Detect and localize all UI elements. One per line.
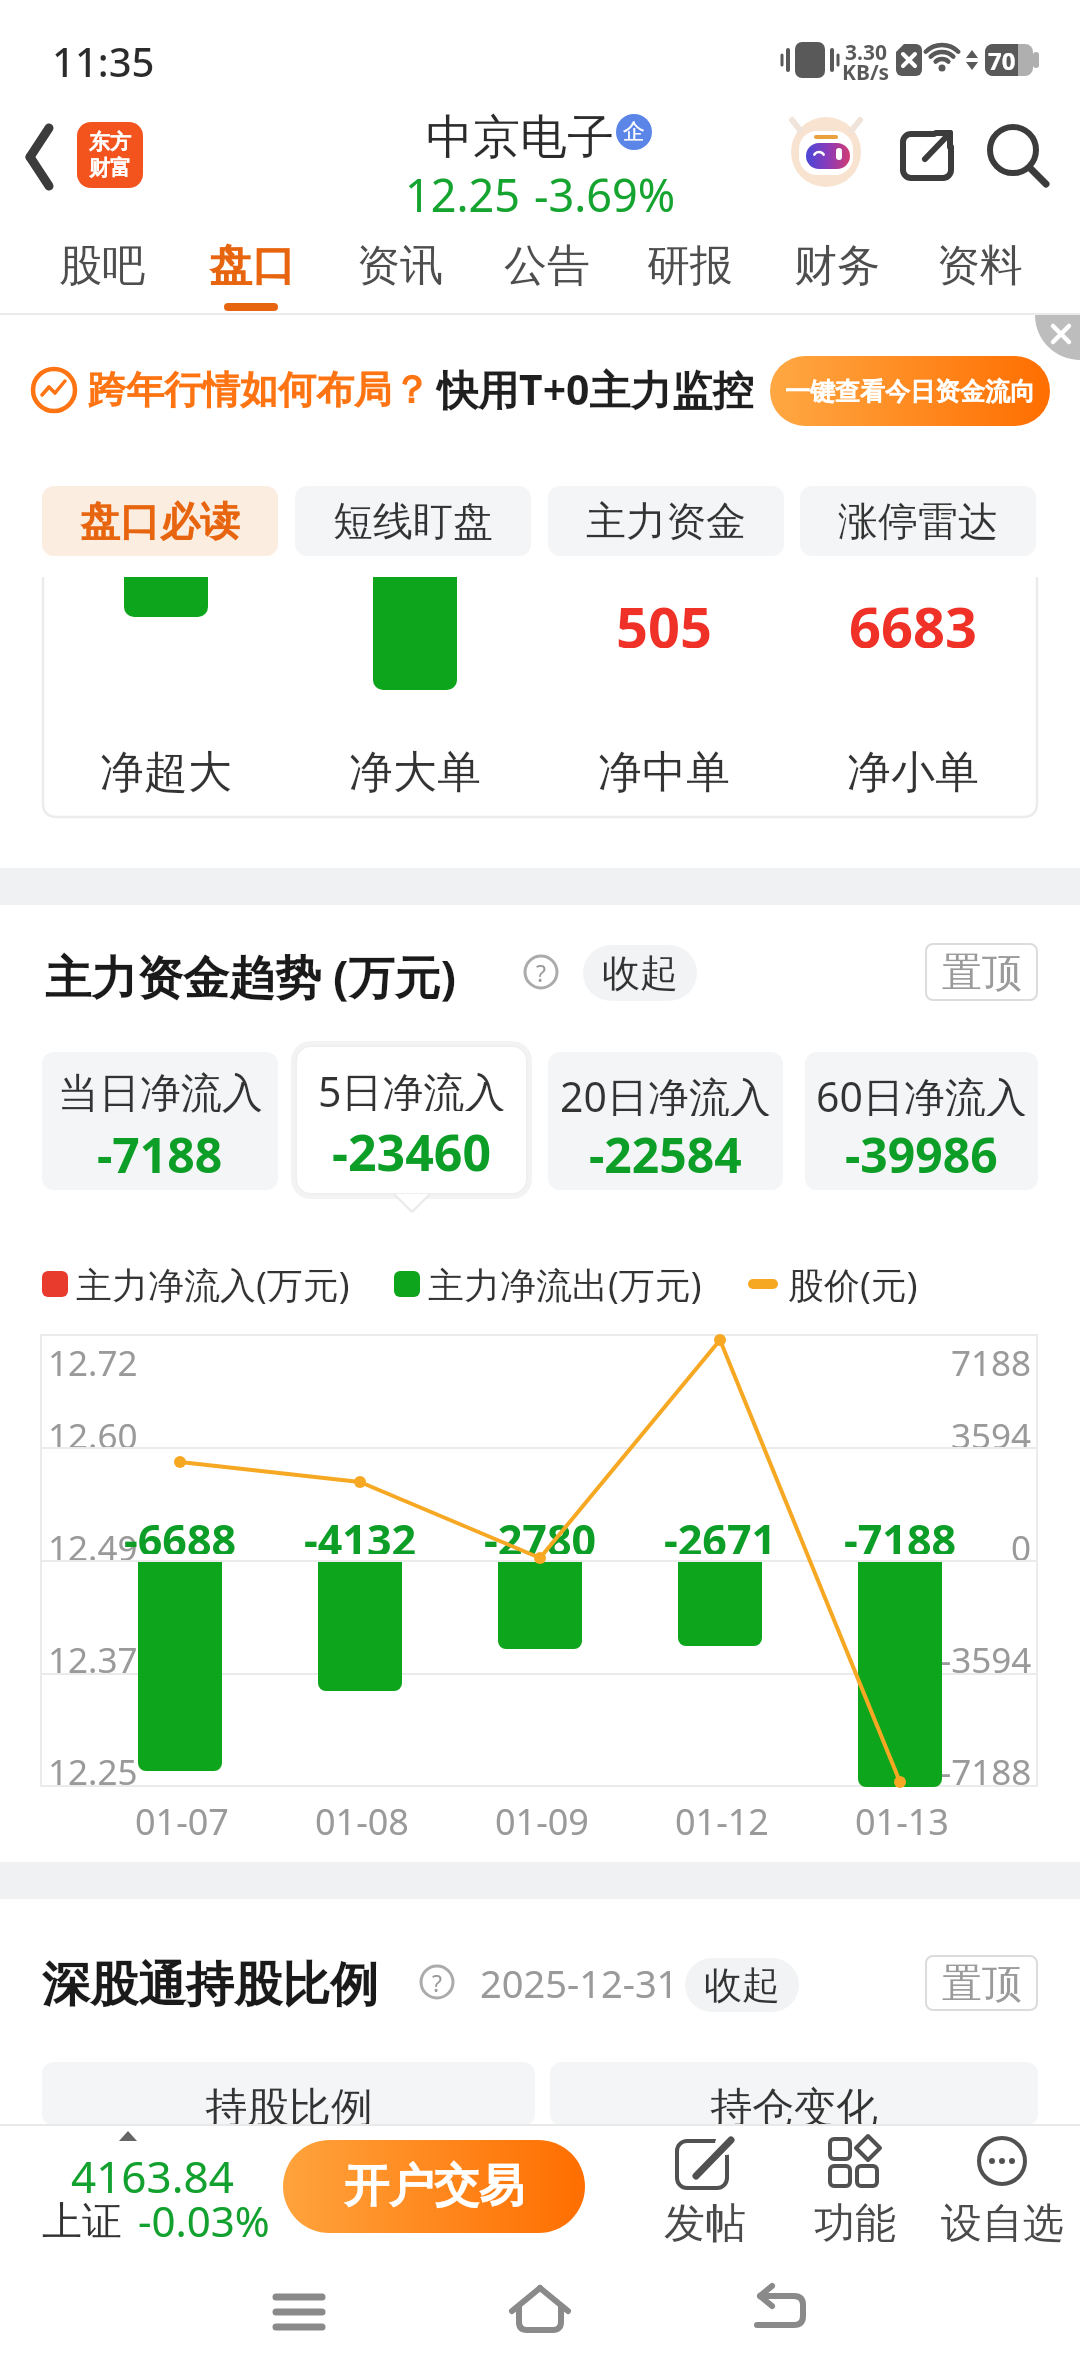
button[interactable]	[650, 2130, 760, 2242]
staticText: 研报	[647, 239, 733, 293]
button[interactable]: 主力资金	[548, 486, 784, 556]
button[interactable]: 开户交易	[283, 2140, 585, 2233]
staticText: 公告	[504, 239, 590, 293]
staticText: 12.25	[405, 164, 521, 212]
button[interactable]	[250, 2270, 350, 2360]
staticText: 12.37	[48, 1636, 138, 1676]
staticText: 主力资金	[586, 496, 746, 546]
staticText: -4132	[304, 1510, 417, 1554]
staticText: 12.60	[48, 1412, 138, 1452]
staticText: 5日净流入	[318, 1063, 506, 1111]
staticText: -6688	[124, 1510, 237, 1554]
button[interactable]	[550, 2062, 1038, 2126]
button[interactable]: 公告	[472, 222, 622, 310]
staticText: ?	[432, 1967, 442, 1998]
button[interactable]: 股吧	[27, 222, 177, 310]
staticText: 股价(元)	[788, 1260, 918, 1309]
button[interactable]: 置顶	[925, 943, 1038, 1001]
staticText: 财务	[794, 239, 880, 293]
staticText: 发帖	[664, 2198, 746, 2246]
staticText: 主力资金趋势 (万元)	[45, 945, 457, 1003]
button[interactable]: 涨停雷达	[800, 486, 1036, 556]
button[interactable]	[490, 2270, 590, 2360]
button[interactable]: 资讯	[325, 222, 475, 310]
staticText: 持仓变化	[710, 2082, 878, 2135]
button[interactable]	[42, 570, 1038, 819]
button[interactable]: 短线盯盘	[295, 486, 531, 556]
staticText: ?	[536, 957, 546, 988]
staticText: 3594	[951, 1412, 1032, 1452]
button[interactable]	[730, 2270, 830, 2360]
staticText: 01-13	[855, 1797, 949, 1841]
button[interactable]: 收起	[685, 1958, 799, 2012]
staticText: -2671	[664, 1510, 777, 1554]
staticText: 01-12	[675, 1797, 769, 1841]
staticText: 深股通持股比例	[42, 1955, 378, 2013]
staticText: 当日净流入	[58, 1068, 263, 1116]
staticText: 12.72	[48, 1339, 138, 1379]
staticText: 净超大	[100, 745, 232, 795]
button[interactable]	[20, 2130, 270, 2246]
staticText: 01-07	[135, 1797, 229, 1841]
staticText: 中京电子	[426, 108, 614, 164]
staticText: 开户交易	[344, 2158, 524, 2215]
staticText: 设自选	[941, 2198, 1064, 2246]
staticText: 12.25	[48, 1748, 138, 1788]
staticText: 505	[616, 588, 713, 648]
button[interactable]	[42, 1052, 278, 1190]
button[interactable]	[791, 119, 861, 187]
staticText: 快用T+0主力监控	[437, 361, 754, 417]
button[interactable]: 财务	[762, 222, 912, 310]
staticText: -3594	[940, 1636, 1032, 1676]
staticText: 盘口必读	[80, 496, 240, 546]
staticText: 12.49	[48, 1524, 138, 1564]
button[interactable]	[0, 315, 1080, 457]
staticText: -23460	[332, 1118, 491, 1174]
button[interactable]	[805, 1052, 1038, 1190]
button[interactable]	[898, 128, 958, 184]
button[interactable]	[945, 2130, 1065, 2242]
staticText: 主力净流出(万元)	[428, 1260, 702, 1309]
staticText: -7188	[844, 1510, 957, 1554]
staticText: 跨年行情如何布局？	[88, 366, 430, 414]
button[interactable]: 研报	[615, 222, 765, 310]
staticText: -22584	[589, 1122, 742, 1178]
button[interactable]: 盘口	[177, 222, 327, 310]
button[interactable]	[42, 2062, 535, 2126]
staticText: -3.69%	[534, 164, 676, 212]
staticText: 股吧	[59, 239, 145, 293]
staticText: -39986	[845, 1122, 998, 1178]
staticText: 功能	[814, 2198, 896, 2246]
button[interactable]: 盘口必读	[42, 486, 278, 556]
button[interactable]: 资料	[905, 222, 1055, 310]
staticText: 收起	[704, 1961, 780, 2009]
staticText: 01-09	[495, 1797, 589, 1841]
staticText: 资料	[937, 239, 1023, 293]
button[interactable]: 置顶	[925, 1955, 1038, 2011]
staticText: 01-08	[315, 1797, 409, 1841]
staticText: 主力净流入(万元)	[76, 1260, 350, 1309]
staticText: 资讯	[357, 239, 443, 293]
button[interactable]	[295, 1045, 528, 1195]
staticText: 东方	[89, 129, 131, 155]
staticText: 0	[1011, 1524, 1032, 1564]
staticText: 11:35	[52, 34, 155, 84]
staticText: -0.03%	[138, 2192, 270, 2244]
button[interactable]	[988, 126, 1058, 190]
staticText: -2780	[484, 1510, 597, 1554]
staticText: 6683	[849, 588, 978, 648]
button[interactable]	[10, 110, 70, 200]
staticText: 20日净流入	[560, 1068, 771, 1116]
staticText: 置顶	[942, 947, 1022, 997]
button[interactable]: 一键查看今日资金流向	[770, 356, 1050, 426]
button[interactable]: 收起	[583, 945, 697, 1001]
button[interactable]	[548, 1052, 783, 1190]
staticText: 持股比例	[205, 2082, 373, 2135]
button[interactable]	[77, 122, 143, 188]
staticText: 涨停雷达	[838, 496, 998, 546]
button[interactable]	[800, 2130, 910, 2242]
staticText: -7188	[97, 1122, 223, 1178]
staticText: 财富	[89, 155, 131, 181]
staticText: 3.30	[845, 38, 887, 62]
staticText: 70	[988, 44, 1016, 76]
